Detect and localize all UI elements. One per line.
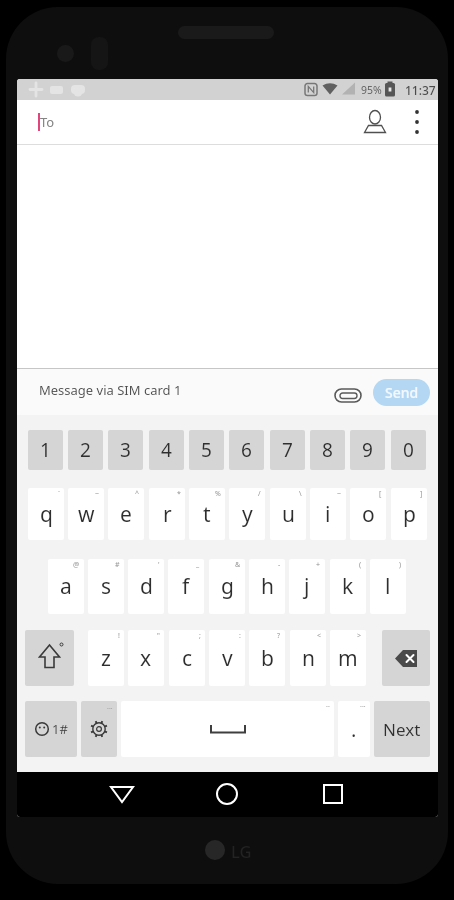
staticText: b: [261, 644, 274, 673]
button[interactable]: v: [209, 630, 245, 686]
button[interactable]: [17, 100, 438, 144]
staticText: /: [258, 489, 261, 499]
staticText: >: [357, 631, 362, 641]
staticText: ··: [326, 702, 330, 712]
staticText: @: [73, 560, 80, 570]
button[interactable]: [25, 630, 74, 686]
staticText: r: [163, 500, 172, 529]
button[interactable]: u: [270, 488, 306, 540]
button[interactable]: r: [149, 488, 185, 540]
staticText: n: [302, 644, 315, 673]
staticText: ;: [199, 631, 201, 641]
button[interactable]: x: [128, 630, 164, 686]
staticText: p: [403, 500, 416, 529]
button[interactable]: y: [229, 488, 265, 540]
button[interactable]: w: [68, 488, 104, 540]
staticText: i: [325, 500, 331, 529]
button[interactable]: i: [310, 488, 346, 540]
staticText: 4: [161, 437, 172, 463]
button[interactable]: s: [88, 559, 124, 614]
staticText: ?: [277, 631, 281, 641]
staticText: ]: [420, 489, 423, 499]
button[interactable]: a: [48, 559, 84, 614]
button[interactable]: o: [350, 488, 386, 540]
staticText: 9: [362, 437, 373, 463]
staticText: 0: [403, 437, 414, 463]
staticText: !: [118, 631, 120, 641]
button[interactable]: q: [28, 488, 64, 540]
button[interactable]: .: [338, 701, 370, 757]
staticText: x: [140, 644, 152, 673]
button[interactable]: l: [370, 559, 406, 614]
button[interactable]: z: [88, 630, 124, 686]
staticText: k: [342, 572, 354, 601]
button[interactable]: h: [249, 559, 285, 614]
button[interactable]: 1#: [25, 701, 77, 757]
button[interactable]: [313, 774, 353, 814]
button[interactable]: Next: [374, 701, 430, 757]
staticText: g: [221, 572, 234, 601]
button[interactable]: 3: [108, 430, 143, 470]
staticText: ~: [337, 489, 342, 499]
staticText: `: [58, 489, 60, 499]
staticText: \: [299, 489, 302, 499]
button[interactable]: 8: [310, 430, 345, 470]
staticText: +: [316, 560, 321, 570]
button[interactable]: j: [289, 559, 325, 614]
staticText: .: [351, 716, 357, 743]
button[interactable]: [361, 108, 389, 136]
staticText: w: [78, 500, 95, 529]
button[interactable]: 0: [391, 430, 426, 470]
button[interactable]: 2: [68, 430, 103, 470]
button[interactable]: g: [209, 559, 245, 614]
button[interactable]: Send: [373, 379, 430, 406]
button[interactable]: [405, 108, 429, 136]
staticText: m: [338, 644, 358, 673]
button[interactable]: [102, 774, 142, 814]
staticText: 95%: [361, 83, 382, 97]
button[interactable]: e: [108, 488, 144, 540]
staticText: h: [261, 572, 274, 601]
staticText: u: [282, 500, 295, 529]
button[interactable]: p: [391, 488, 427, 540]
staticText: ···: [360, 702, 366, 712]
staticText: 1: [40, 437, 51, 463]
staticText: <: [317, 631, 322, 641]
staticText: 7: [282, 437, 293, 463]
staticText: c: [182, 644, 193, 673]
button[interactable]: 1: [28, 430, 63, 470]
staticText: To: [40, 113, 55, 131]
button[interactable]: b: [249, 630, 285, 686]
button[interactable]: ··: [121, 701, 334, 757]
button[interactable]: 5: [189, 430, 224, 470]
button[interactable]: t: [189, 488, 225, 540]
button[interactable]: 7: [270, 430, 305, 470]
staticText: f: [182, 572, 190, 601]
button[interactable]: [382, 630, 430, 686]
staticText: ": [157, 631, 160, 641]
button[interactable]: 4: [149, 430, 184, 470]
button[interactable]: [333, 386, 365, 406]
staticText: t: [203, 500, 211, 529]
staticText: z: [101, 644, 111, 673]
staticText: #: [115, 560, 120, 570]
button[interactable]: n: [290, 630, 326, 686]
button[interactable]: c: [169, 630, 205, 686]
staticText: j: [304, 572, 310, 601]
staticText: y: [242, 500, 253, 529]
button[interactable]: f: [168, 559, 204, 614]
button[interactable]: [207, 774, 247, 814]
button[interactable]: 6: [229, 430, 264, 470]
staticText: e: [120, 500, 132, 529]
button[interactable]: 9: [350, 430, 385, 470]
button[interactable]: k: [330, 559, 366, 614]
button[interactable]: ...: [81, 701, 117, 757]
staticText: ...: [107, 702, 113, 712]
staticText: Send: [385, 383, 419, 402]
staticText: ': [158, 560, 160, 570]
button[interactable]: m: [330, 630, 366, 686]
staticText: 5: [201, 437, 212, 463]
staticText: ^: [135, 489, 140, 499]
button[interactable]: d: [128, 559, 164, 614]
staticText: l: [385, 572, 391, 601]
